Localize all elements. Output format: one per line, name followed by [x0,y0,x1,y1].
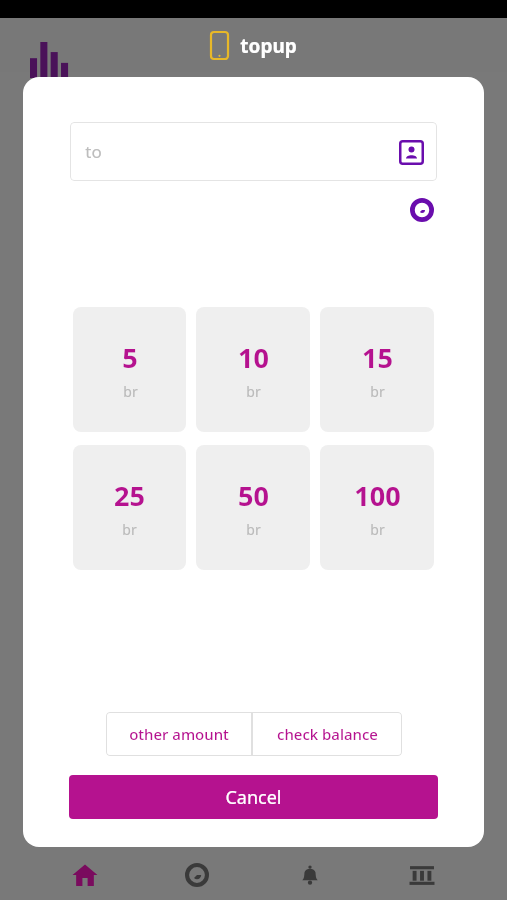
button[interactable]: Notifications [282,851,338,899]
staticText: br [246,382,261,401]
staticText: 50 [238,477,269,514]
button[interactable]: Home [57,851,113,899]
staticText: 5 [122,339,138,376]
staticText: br [246,520,261,539]
staticText: other amount [129,724,229,744]
button[interactable]: to [70,122,437,181]
staticText: 25 [114,477,145,514]
staticText: to [85,140,102,163]
button[interactable]: 5 [73,307,186,432]
staticText: topup [240,33,297,59]
button[interactable]: other amount [106,712,252,756]
button[interactable]: 100 [320,445,434,570]
staticText: br [123,382,138,401]
staticText: 100 [354,477,401,514]
button[interactable]: Pick contact [397,138,425,166]
button[interactable]: Recent [407,195,437,225]
staticText: br [370,520,385,539]
staticText: br [370,382,385,401]
button[interactable]: Bank [394,851,450,899]
button[interactable]: 15 [320,307,434,432]
staticText: check balance [277,724,378,744]
button[interactable]: 10 [196,307,310,432]
staticText: Cancel [225,785,282,810]
staticText: 10 [238,339,269,376]
button[interactable]: check balance [252,712,402,756]
button[interactable]: 25 [73,445,186,570]
button[interactable]: 50 [196,445,310,570]
staticText: 15 [362,339,393,376]
button[interactable]: Cancel [69,775,438,819]
staticText: br [122,520,137,539]
button[interactable]: History [169,851,225,899]
